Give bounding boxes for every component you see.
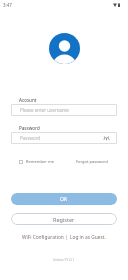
button[interactable]: Show password [103, 135, 109, 141]
button[interactable]: Remember me [19, 159, 54, 164]
staticText: OK [60, 196, 68, 203]
staticText: Account [19, 97, 37, 103]
button[interactable]: Forgot password [76, 159, 108, 164]
button[interactable]: OK [11, 193, 117, 205]
staticText: Remember me [26, 159, 54, 164]
button[interactable]: Please enter username [11, 104, 117, 116]
button[interactable]: Register [11, 213, 117, 225]
staticText: Register [53, 216, 75, 223]
staticText: | [64, 234, 70, 241]
button[interactable]: Password [11, 132, 117, 144]
staticText: Password [19, 125, 40, 131]
staticText: Please enter username [20, 107, 69, 113]
staticText: 3:47 [3, 2, 12, 8]
button[interactable]: Log in as Guest. [70, 234, 106, 241]
button[interactable]: WiFi Configuration [22, 234, 64, 241]
staticText: Password [20, 135, 41, 141]
staticText: Zetara V1.0.1 [53, 257, 75, 262]
